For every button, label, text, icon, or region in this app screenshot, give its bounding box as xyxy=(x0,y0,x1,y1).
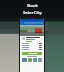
button[interactable]: Photo thumbnail xyxy=(22,58,27,62)
button[interactable]: Photo thumbnail xyxy=(38,58,42,62)
button[interactable]: Photo thumbnail xyxy=(28,58,32,62)
button[interactable] xyxy=(22,43,42,44)
button[interactable] xyxy=(20,25,44,36)
button[interactable] xyxy=(22,47,42,48)
staticText: InterCity xyxy=(23,10,42,16)
button[interactable]: Photo thumbnail xyxy=(33,58,37,62)
button[interactable]: Back xyxy=(20,21,44,25)
other: Back xyxy=(21,22,23,24)
button[interactable] xyxy=(22,45,42,46)
staticText: SmartBus xyxy=(22,17,42,22)
staticText: Book xyxy=(27,3,38,9)
button[interactable] xyxy=(22,49,42,50)
button[interactable]: Book now xyxy=(22,52,42,55)
